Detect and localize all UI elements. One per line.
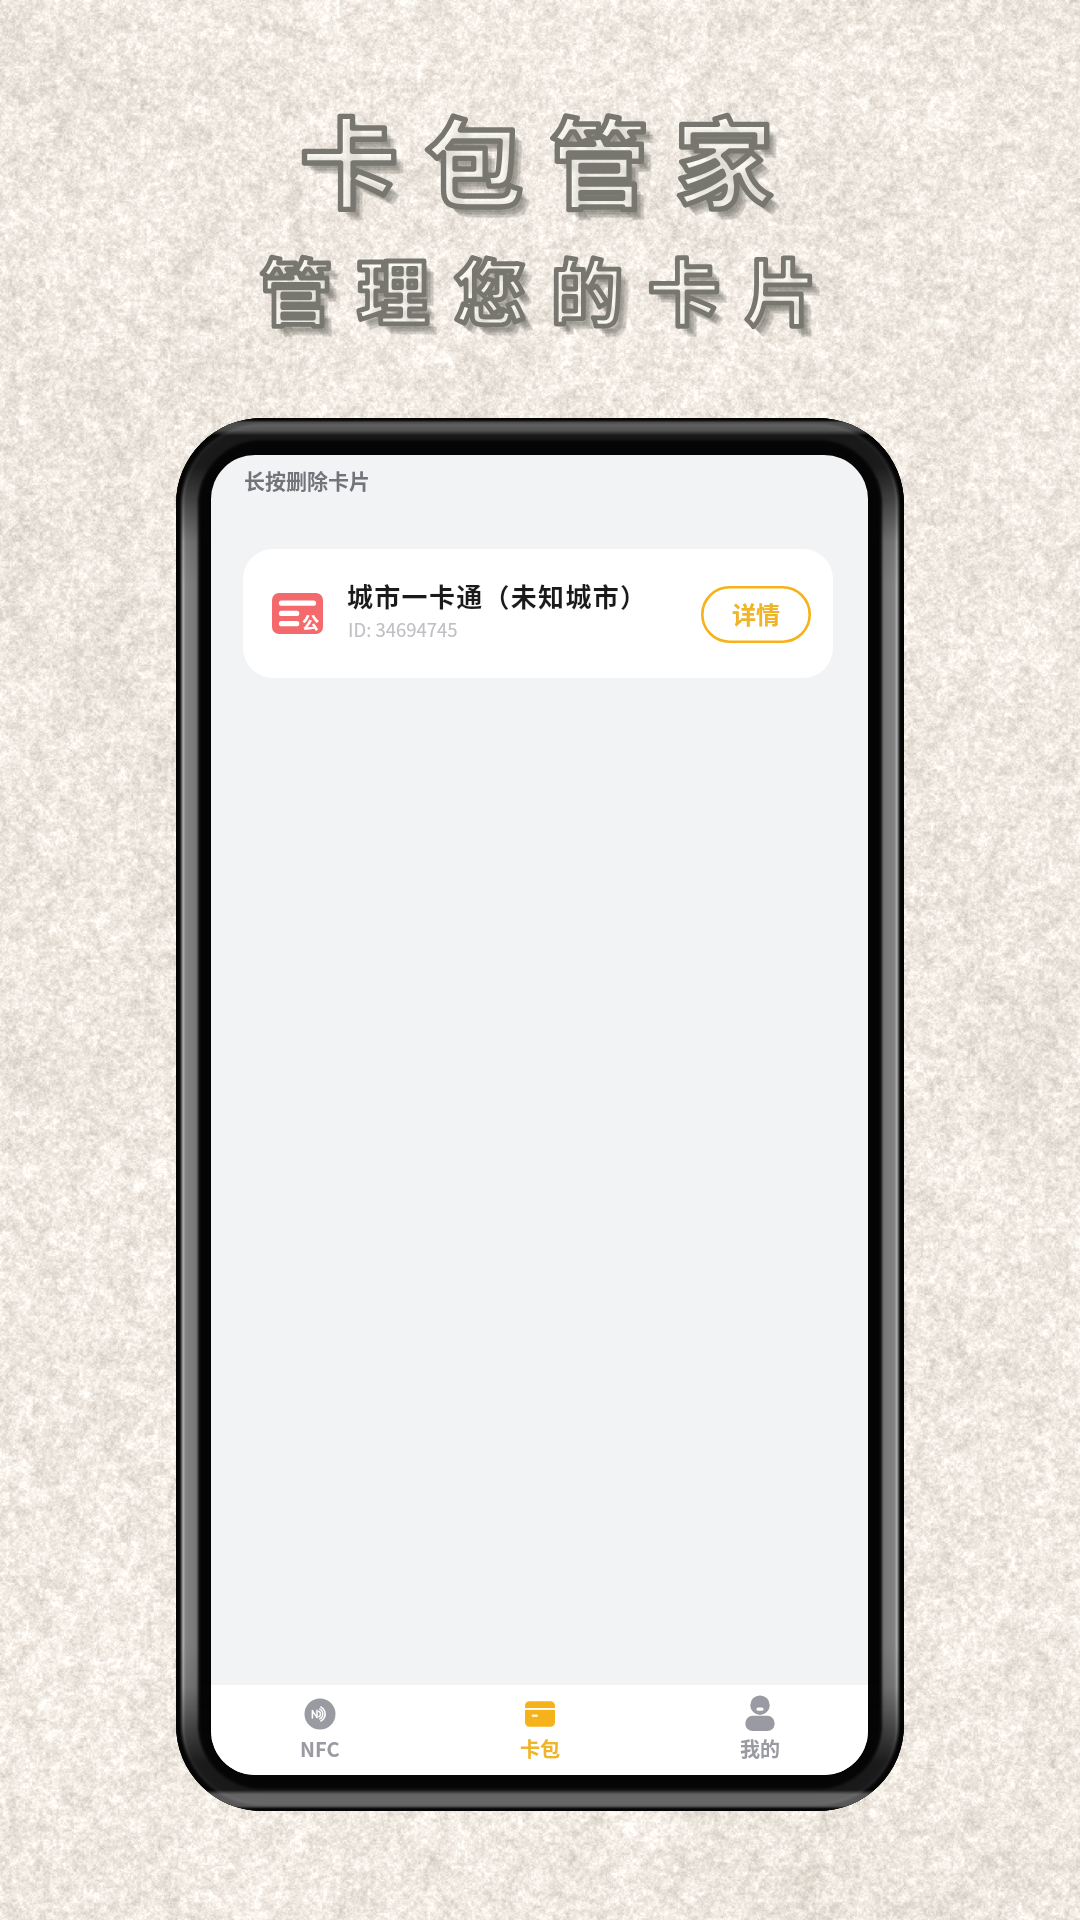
staticText: 公 (302, 609, 319, 634)
staticText: ID: 34694745 (348, 616, 458, 643)
button[interactable]: 详情 (701, 586, 811, 643)
staticText: 长按删除卡片 (244, 465, 370, 495)
staticText: 管理您的卡片 (269, 245, 852, 349)
staticText: 卡包管家 (310, 97, 811, 239)
button[interactable]: Card wallet (480, 1685, 600, 1775)
staticText: 管理您的卡片 (260, 235, 843, 339)
staticText: 卡包管家 (306, 93, 807, 235)
button[interactable]: Profile (700, 1685, 820, 1775)
button[interactable]: 公 (243, 549, 833, 678)
staticText: 详情 (732, 596, 780, 631)
staticText: 卡包管家 (304, 91, 805, 233)
staticText: 卡包 (520, 1734, 560, 1763)
staticText: 卡包管家 (300, 86, 801, 228)
other: NFC (304, 1698, 336, 1730)
staticText: 管理您的卡片 (270, 246, 853, 350)
staticText: 管理您的卡片 (260, 235, 843, 339)
other: Card wallet (524, 1698, 556, 1730)
staticText: 管理您的卡片 (264, 240, 847, 344)
staticText: 城市一卡通（未知城市） (347, 577, 648, 615)
other: Profile (744, 1698, 776, 1730)
staticText: NFC (300, 1734, 340, 1763)
staticText: 我的 (740, 1734, 780, 1763)
staticText: 卡包管家 (307, 94, 808, 236)
button[interactable]: NFC (260, 1685, 380, 1775)
staticText: 管理您的卡片 (267, 243, 850, 347)
staticText: 卡包管家 (309, 96, 810, 238)
staticText: 管理您的卡片 (266, 242, 849, 346)
staticText: 卡包管家 (300, 86, 801, 228)
